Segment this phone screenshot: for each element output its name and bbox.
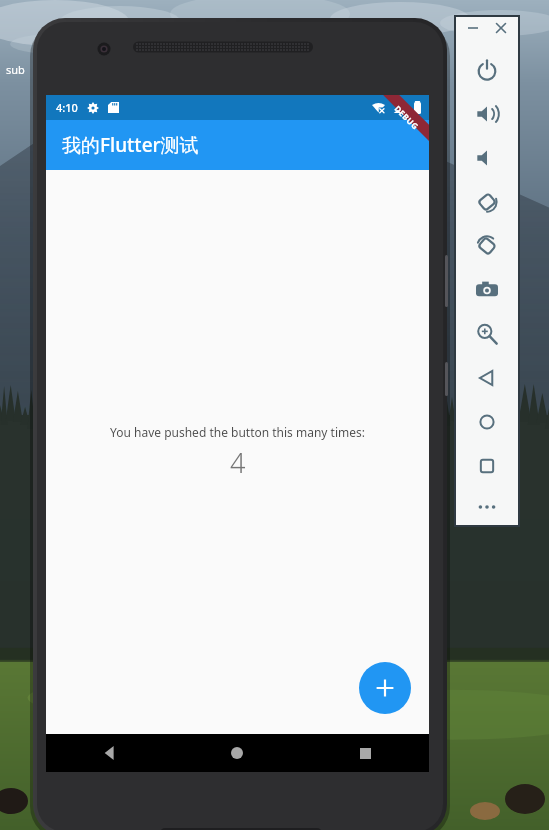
button[interactable]: Take screenshot bbox=[455, 268, 519, 312]
button[interactable]: Zoom bbox=[455, 312, 519, 356]
staticText: DEBUG bbox=[392, 103, 421, 132]
button[interactable]: Home bbox=[455, 400, 519, 444]
button[interactable]: Back bbox=[46, 734, 173, 772]
button[interactable]: Volume up bbox=[455, 92, 519, 136]
button[interactable]: Overview bbox=[455, 444, 519, 488]
button[interactable]: Minimize bbox=[462, 17, 484, 39]
staticText: 4:10 bbox=[56, 100, 78, 115]
button[interactable]: More bbox=[455, 488, 519, 526]
button[interactable]: Home bbox=[173, 734, 301, 772]
staticText: You have pushed the button this many tim… bbox=[110, 424, 365, 440]
button[interactable]: Rotate right bbox=[455, 224, 519, 268]
button[interactable]: Increment bbox=[359, 662, 411, 714]
button[interactable]: Close bbox=[490, 17, 512, 39]
staticText: sub bbox=[6, 62, 25, 77]
staticText: 我的Flutter测试 bbox=[62, 132, 199, 158]
button[interactable]: Recent apps bbox=[301, 734, 429, 772]
button[interactable]: Volume down bbox=[455, 136, 519, 180]
staticText: 4 bbox=[230, 444, 246, 481]
button[interactable]: Power bbox=[455, 48, 519, 92]
button[interactable]: Rotate left bbox=[455, 180, 519, 224]
button[interactable]: Back bbox=[455, 356, 519, 400]
